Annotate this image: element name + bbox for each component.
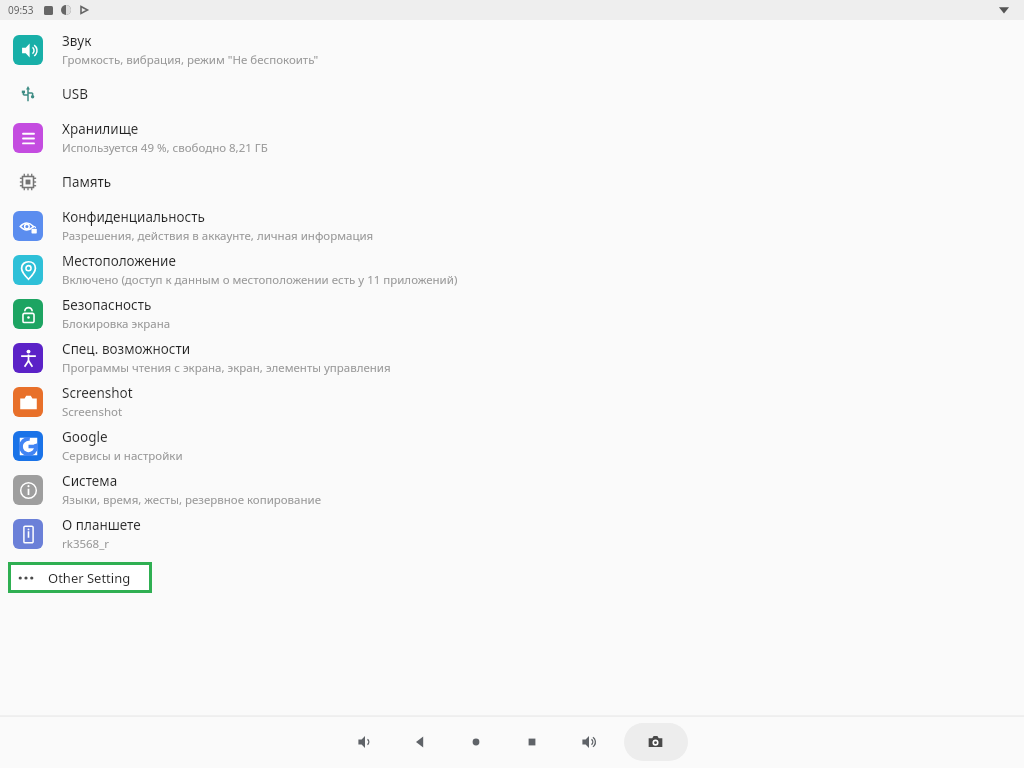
staticText: Блокировка экрана	[62, 316, 171, 332]
button[interactable]: Screenshot	[0, 380, 1024, 424]
button[interactable]: Спец. возможности	[0, 336, 1024, 380]
staticText: Спец. возможности	[62, 340, 191, 358]
button[interactable]: Безопасность	[0, 292, 1024, 336]
button[interactable]: Конфиденциальность	[0, 204, 1024, 248]
staticText: rk3568_r	[62, 536, 110, 552]
staticText: Безопасность	[62, 296, 152, 314]
staticText: Screenshot	[62, 384, 133, 402]
button[interactable]: Screenshot	[624, 723, 688, 761]
button[interactable]: Volume down	[336, 723, 392, 761]
button[interactable]: Volume up	[560, 723, 616, 761]
button[interactable]: Система	[0, 468, 1024, 512]
staticText: Конфиденциальность	[62, 208, 205, 226]
button[interactable]: Home	[448, 723, 504, 761]
staticText: Языки, время, жесты, резервное копирован…	[62, 492, 322, 508]
button[interactable]: Other Setting	[8, 562, 152, 593]
button[interactable]: Google	[0, 424, 1024, 468]
button[interactable]: О планшете	[0, 512, 1024, 556]
staticText: Громкость, вибрация, режим "Не беспокоит…	[62, 52, 319, 68]
staticText: Используется 49 %, свободно 8,21 ГБ	[62, 140, 268, 156]
staticText: Система	[62, 472, 118, 490]
button[interactable]: Местоположение	[0, 248, 1024, 292]
staticText: 09:53	[8, 3, 34, 17]
button[interactable]: Хранилище	[0, 116, 1024, 160]
staticText: Google	[62, 428, 108, 446]
staticText: Screenshot	[62, 404, 123, 420]
staticText: Хранилище	[62, 120, 139, 138]
staticText: Включено (доступ к данным о местоположен…	[62, 272, 458, 288]
staticText: USB	[62, 85, 89, 103]
staticText: Местоположение	[62, 252, 176, 270]
staticText: Программы чтения с экрана, экран, элемен…	[62, 360, 391, 376]
staticText: Звук	[62, 32, 92, 50]
staticText: Разрешения, действия в аккаунте, личная …	[62, 228, 374, 244]
button[interactable]: USB	[0, 72, 1024, 116]
button[interactable]: Back	[392, 723, 448, 761]
staticText: О планшете	[62, 516, 141, 534]
staticText: Other Setting	[48, 569, 131, 587]
staticText: Сервисы и настройки	[62, 448, 183, 464]
button[interactable]: Память	[0, 160, 1024, 204]
button[interactable]: Recents	[504, 723, 560, 761]
button[interactable]: Звук	[0, 28, 1024, 72]
staticText: Память	[62, 173, 112, 191]
